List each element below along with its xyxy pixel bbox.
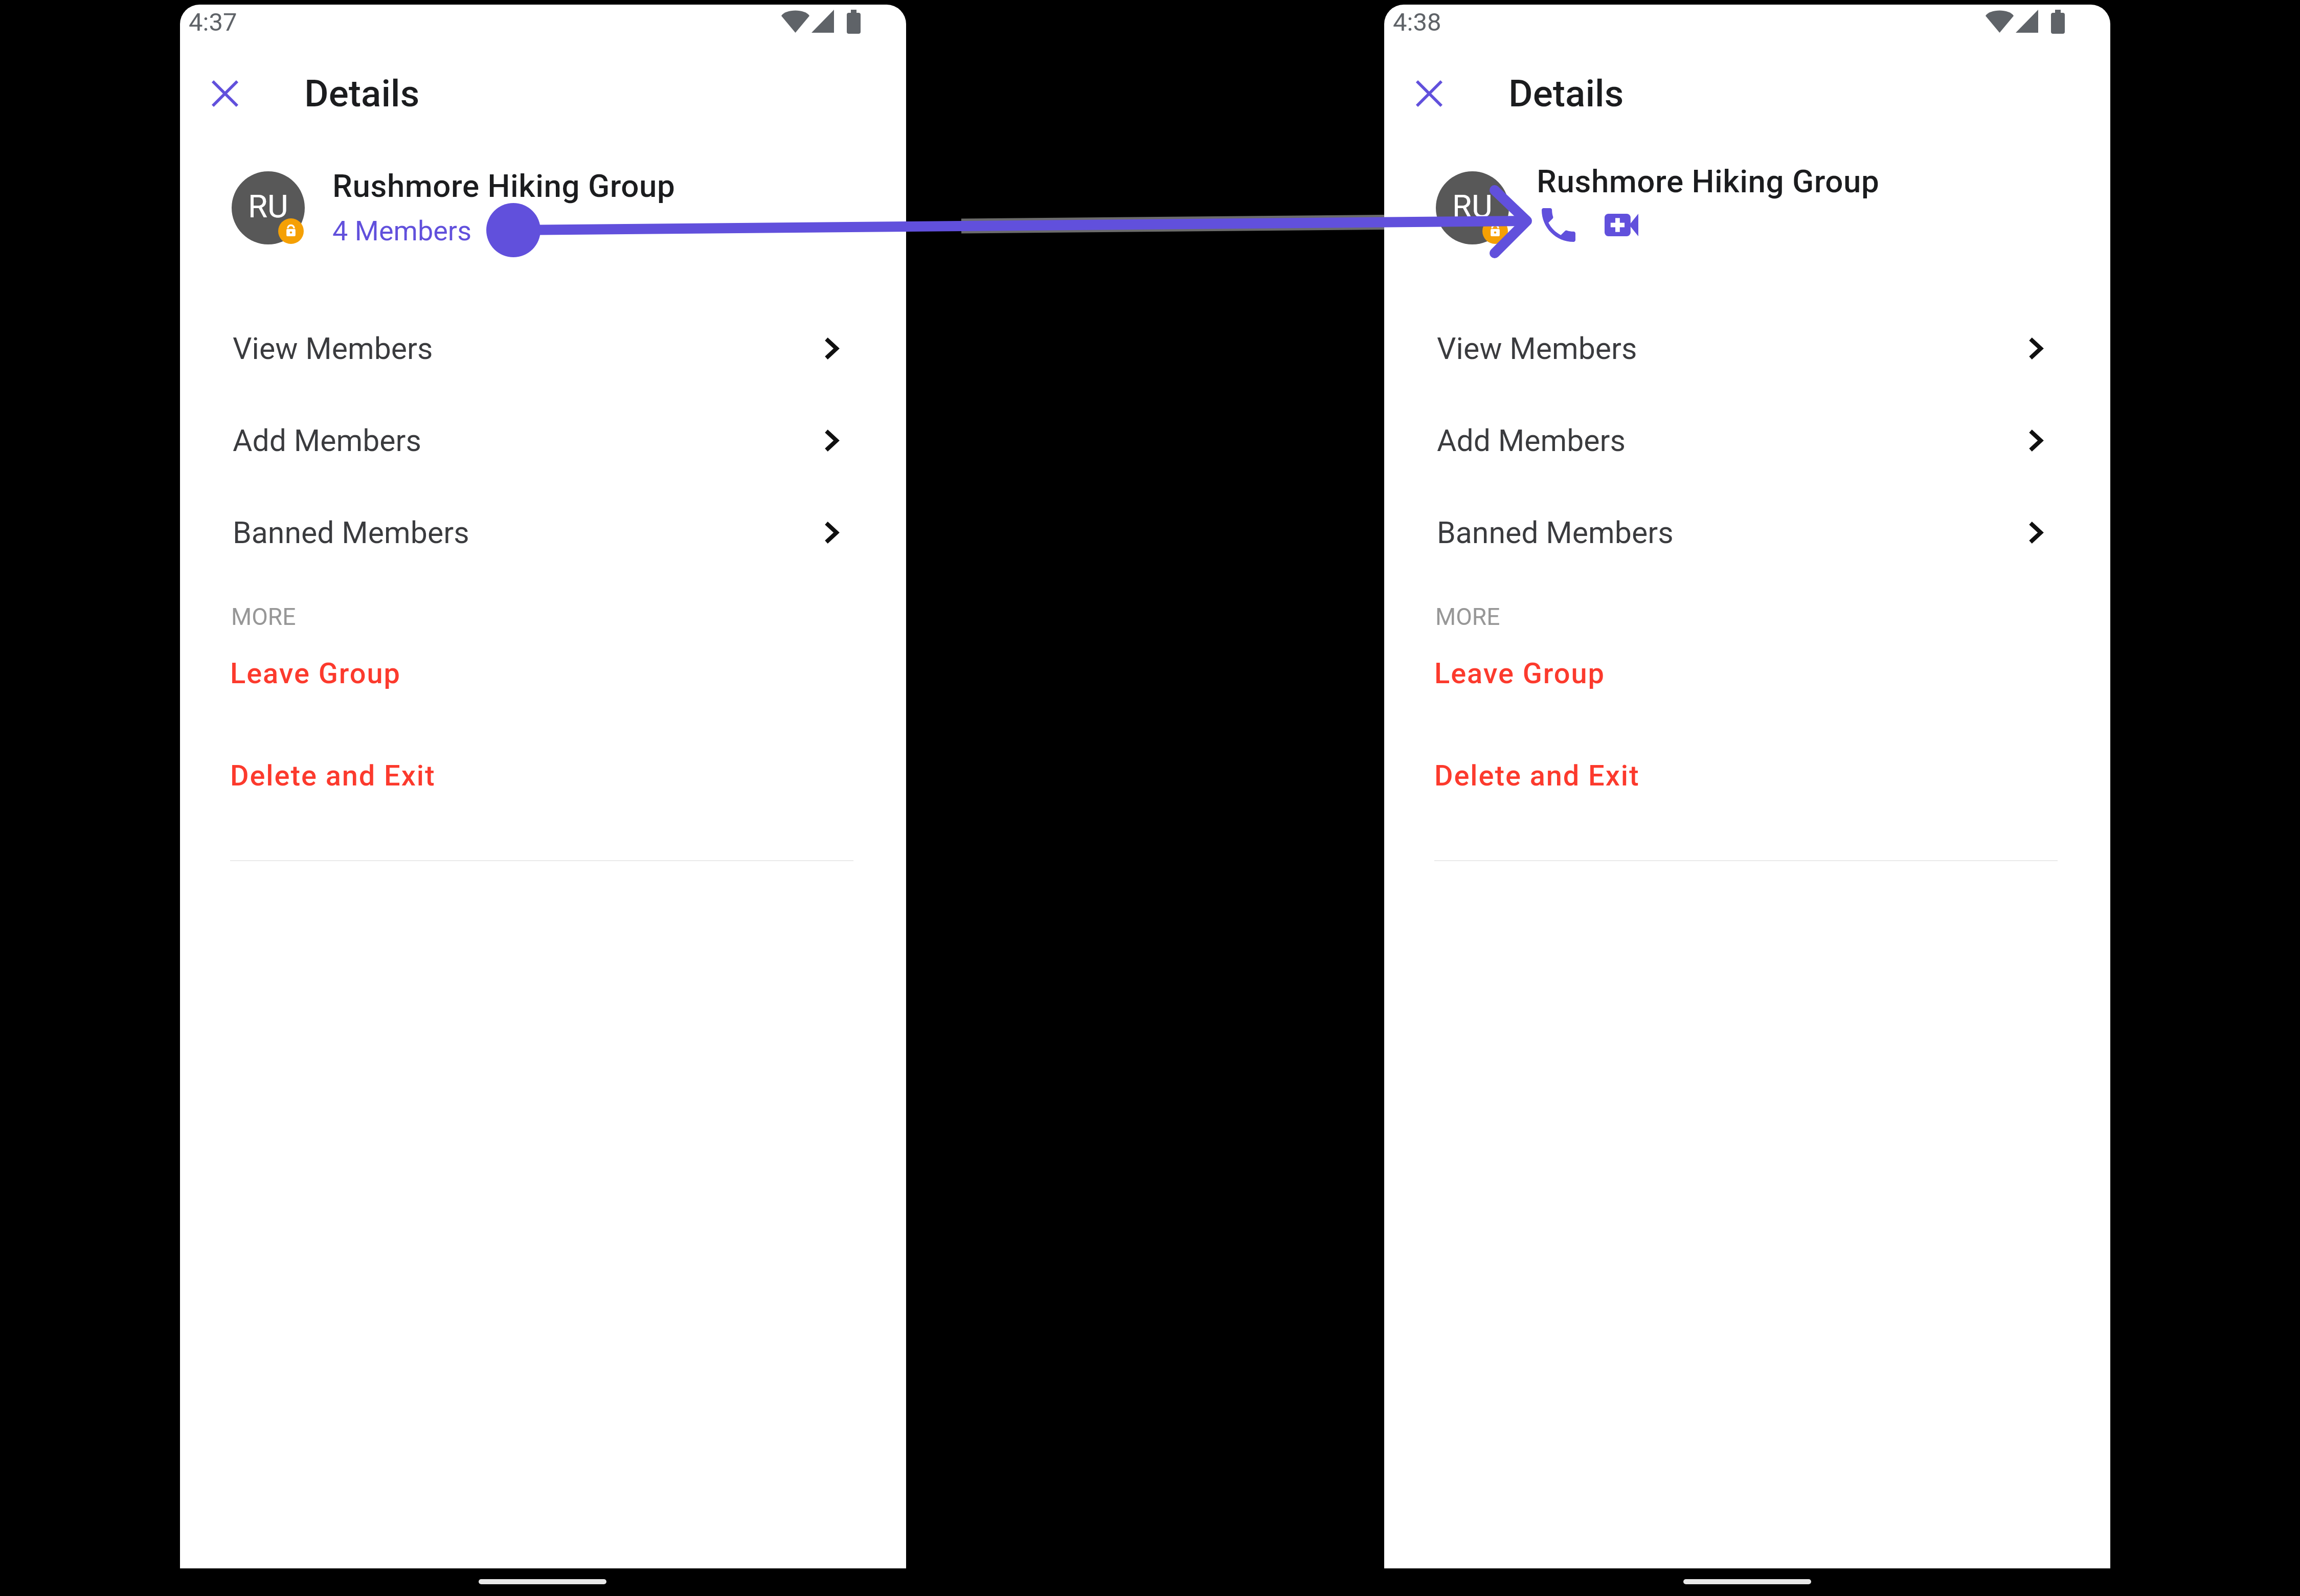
button[interactable]: Delete and Exit (230, 745, 855, 806)
staticText: RU (248, 188, 288, 225)
staticText: Banned Members (1437, 515, 1674, 550)
staticText: Add Members (1437, 423, 1626, 458)
staticText: Banned Members (233, 515, 469, 550)
button[interactable]: Banned Members (1434, 486, 2060, 579)
staticText: Delete and Exit (230, 759, 436, 793)
button[interactable]: Leave Group (230, 643, 855, 704)
button[interactable]: Banned Members (230, 486, 856, 579)
staticText: View Members (1437, 331, 1637, 366)
staticText: Details (304, 72, 420, 116)
button[interactable]: Close (1400, 64, 1458, 123)
button[interactable]: Add Members (1434, 394, 2060, 487)
staticText: Delete and Exit (1434, 759, 1640, 793)
staticText: Rushmore Hiking Group (1537, 163, 1880, 200)
staticText: Details (1508, 72, 1624, 116)
button[interactable]: View Members (230, 302, 856, 395)
staticText: 4 Members (332, 215, 472, 247)
button[interactable]: Delete and Exit (1434, 745, 2059, 806)
staticText: 4:38 (1393, 8, 1441, 37)
staticText: 4:37 (189, 8, 237, 37)
staticText: Rushmore Hiking Group (332, 167, 675, 205)
staticText: MORE (1435, 603, 1500, 631)
button[interactable]: Video call (1598, 202, 1644, 248)
staticText: Leave Group (230, 657, 401, 690)
staticText: View Members (233, 331, 433, 366)
staticText: RU (1452, 188, 1493, 225)
button[interactable]: Add Members (230, 394, 856, 487)
staticText: Leave Group (1434, 657, 1605, 690)
button[interactable]: View Members (1434, 302, 2060, 395)
button[interactable]: Leave Group (1434, 643, 2059, 704)
button[interactable]: Close (196, 64, 254, 123)
staticText: MORE (231, 603, 296, 631)
staticText: Add Members (233, 423, 422, 458)
button[interactable]: Call (1536, 202, 1582, 248)
